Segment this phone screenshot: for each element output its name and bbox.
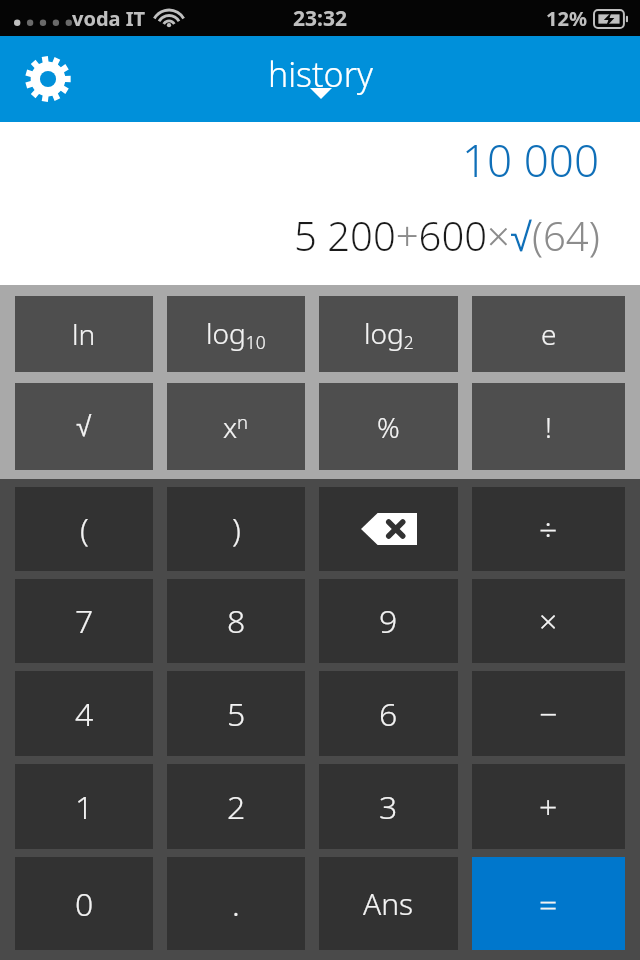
button[interactable]: Settings: [22, 53, 74, 105]
button[interactable]: −: [472, 671, 625, 756]
button[interactable]: log10: [167, 296, 305, 372]
staticText: 0: [75, 882, 94, 926]
staticText: 12%: [546, 5, 587, 32]
button[interactable]: +: [472, 764, 625, 849]
button[interactable]: √: [15, 383, 153, 470]
staticText: log10: [206, 314, 266, 354]
staticText: 9: [379, 599, 398, 643]
button[interactable]: .: [167, 857, 305, 950]
staticText: Ans: [363, 883, 414, 924]
staticText: √: [76, 411, 92, 442]
button[interactable]: 6: [319, 671, 458, 756]
staticText: 1: [75, 785, 94, 829]
staticText: +: [539, 785, 558, 829]
button[interactable]: Backspace: [319, 487, 458, 571]
staticText: e: [541, 315, 557, 353]
button[interactable]: ×: [472, 579, 625, 663]
button[interactable]: (: [15, 487, 153, 571]
button[interactable]: log2: [319, 296, 458, 372]
staticText: .: [232, 882, 240, 926]
button[interactable]: ln: [15, 296, 153, 372]
button[interactable]: 2: [167, 764, 305, 849]
button[interactable]: %: [319, 383, 458, 470]
button[interactable]: e: [472, 296, 625, 372]
staticText: 5: [227, 692, 246, 736]
staticText: (: [80, 507, 89, 551]
staticText: xn: [223, 408, 249, 446]
staticText: 4: [75, 692, 94, 736]
button[interactable]: Ans: [319, 857, 458, 950]
button[interactable]: ): [167, 487, 305, 571]
staticText: 10 000: [462, 130, 600, 190]
button[interactable]: history: [268, 51, 373, 108]
staticText: %: [377, 408, 400, 446]
button[interactable]: 1: [15, 764, 153, 849]
staticText: log2: [364, 314, 414, 354]
staticText: 7: [75, 599, 94, 643]
button[interactable]: 8: [167, 579, 305, 663]
button[interactable]: !: [472, 383, 625, 470]
staticText: ×: [539, 599, 558, 643]
button[interactable]: ÷: [472, 487, 625, 571]
staticText: !: [545, 408, 552, 446]
staticText: 8: [227, 599, 246, 643]
staticText: 23:32: [293, 4, 347, 33]
button[interactable]: 4: [15, 671, 153, 756]
staticText: history: [268, 51, 373, 97]
staticText: voda IT: [72, 5, 146, 32]
staticText: =: [539, 882, 558, 926]
staticText: ÷: [539, 507, 558, 551]
staticText: 5 200+600×√(64): [294, 208, 600, 262]
button[interactable]: 7: [15, 579, 153, 663]
staticText: ): [232, 507, 241, 551]
staticText: −: [539, 692, 558, 736]
button[interactable]: 0: [15, 857, 153, 950]
button[interactable]: =: [472, 857, 625, 950]
staticText: 6: [379, 692, 398, 736]
button[interactable]: 5: [167, 671, 305, 756]
button[interactable]: 9: [319, 579, 458, 663]
staticText: ln: [72, 315, 96, 353]
staticText: 3: [379, 785, 398, 829]
button[interactable]: 3: [319, 764, 458, 849]
button[interactable]: xn: [167, 383, 305, 470]
staticText: 2: [227, 785, 246, 829]
